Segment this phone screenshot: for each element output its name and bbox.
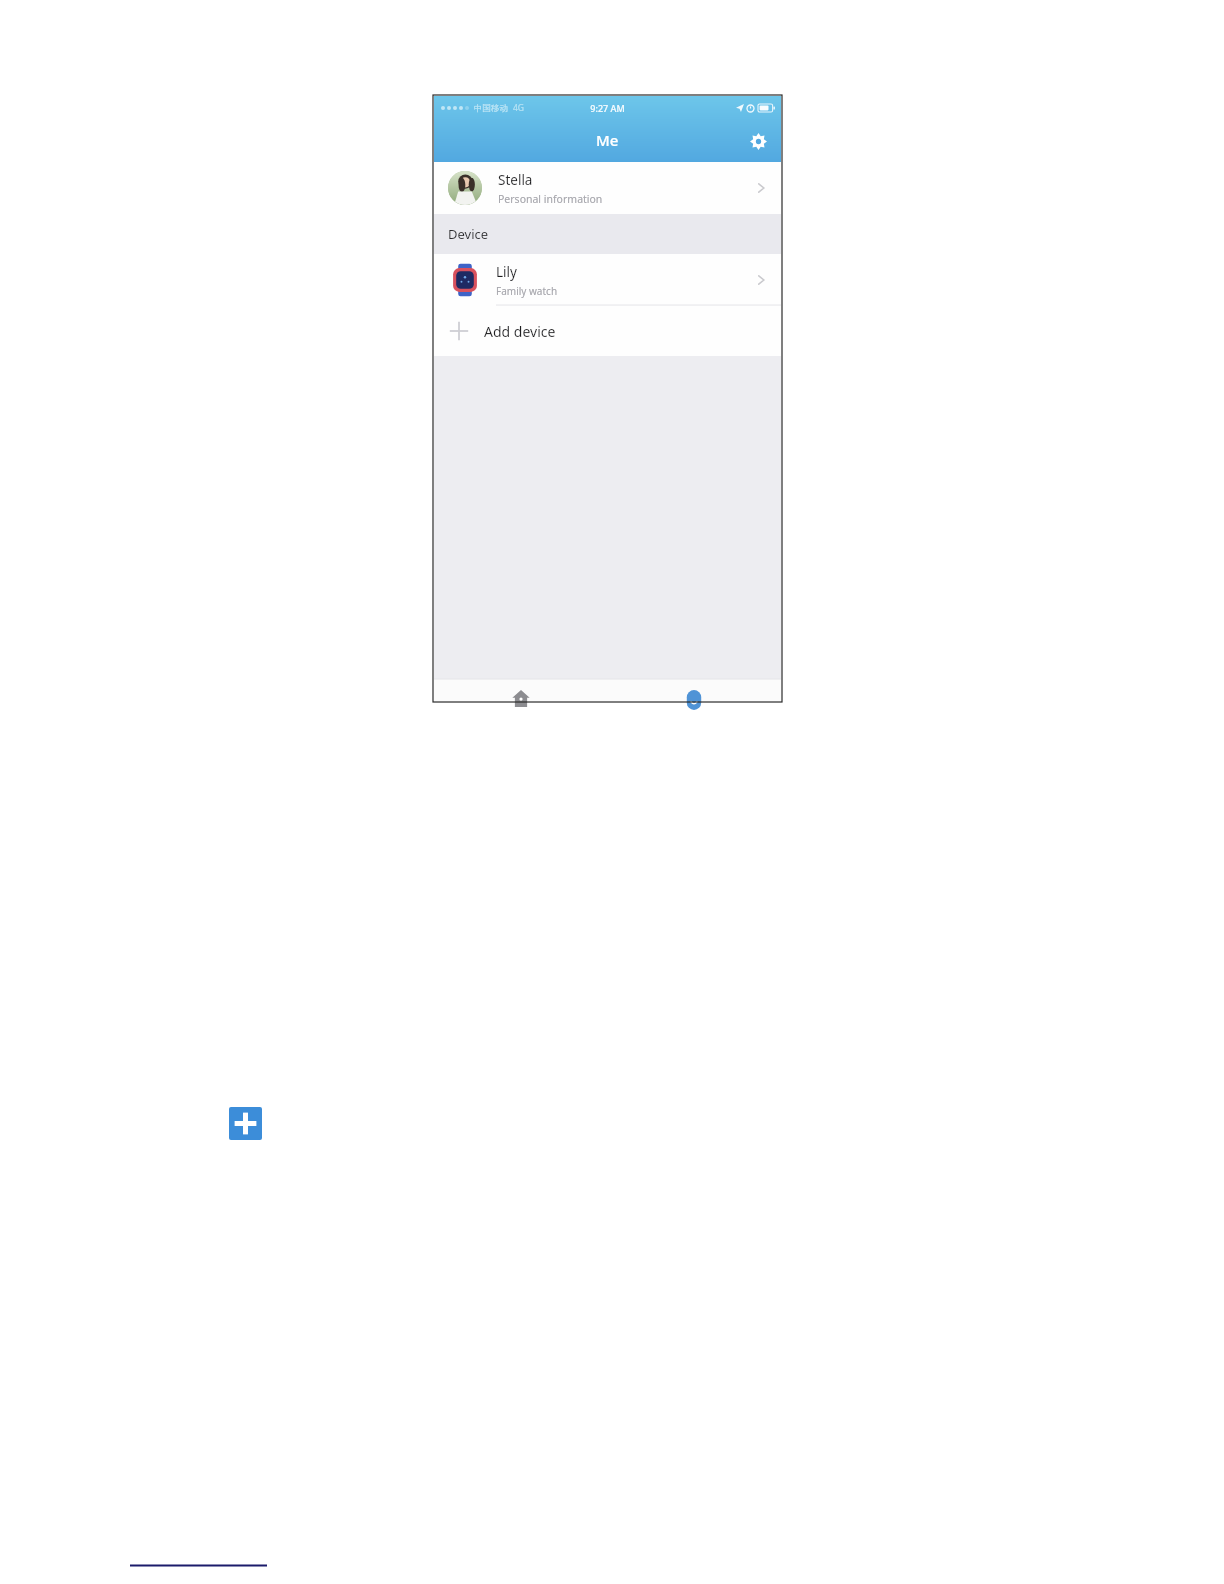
staticText: Device bbox=[448, 225, 489, 243]
staticText: Lily bbox=[496, 263, 517, 281]
button[interactable]: Settings bbox=[745, 128, 771, 154]
staticText: Personal information bbox=[498, 192, 603, 206]
button[interactable]: Home bbox=[434, 679, 607, 701]
staticText: 9:27 AM bbox=[590, 102, 625, 114]
staticText: 4G bbox=[513, 102, 525, 114]
button[interactable]: Me bbox=[607, 679, 781, 701]
button[interactable]: Add bbox=[229, 1107, 262, 1140]
button[interactable]: Stella bbox=[434, 162, 781, 214]
staticText: Family watch bbox=[496, 284, 558, 298]
staticText: 中国移动 bbox=[474, 103, 508, 114]
staticText: Me bbox=[596, 130, 619, 150]
button[interactable]: Add device bbox=[434, 306, 781, 356]
staticText: Stella bbox=[498, 171, 533, 189]
button[interactable]: Lily bbox=[434, 254, 781, 306]
staticText: Add device bbox=[484, 322, 556, 341]
